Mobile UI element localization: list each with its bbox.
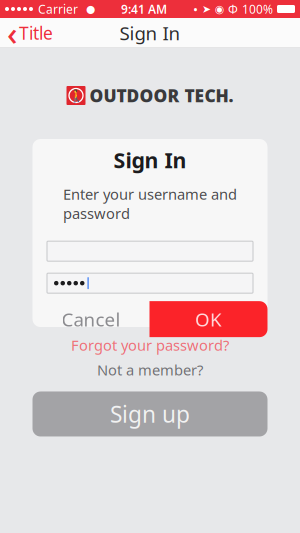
staticText: ‹ [7, 12, 17, 54]
staticText: Title [19, 21, 53, 44]
button[interactable]: Sign up [32, 391, 267, 436]
staticText: ➤ [202, 3, 211, 15]
staticText: Carrier [38, 1, 78, 17]
button[interactable]: Cancel [32, 301, 149, 337]
staticText: 100% [242, 1, 273, 17]
button[interactable]: Forgot your password? [50, 334, 250, 356]
staticText: Forgot your password? [71, 335, 229, 355]
staticText: ● [86, 3, 95, 15]
staticText: ◉ [215, 3, 224, 15]
staticText: • [193, 0, 198, 18]
staticText: 🚶 [68, 89, 83, 102]
button[interactable]: OK [149, 301, 267, 337]
staticText: OK [195, 307, 222, 332]
staticText: Cancel [61, 307, 120, 332]
staticText: Sign In [119, 21, 180, 45]
staticText: Enter your username and password [63, 184, 237, 223]
staticText: 9:41 AM [121, 1, 167, 17]
staticText: Ф [228, 1, 238, 17]
staticText: Not a member? [97, 360, 203, 379]
staticText: Sign In [113, 146, 186, 174]
button[interactable]: ‹ [0, 18, 61, 48]
staticText: OUTDOOR TECH. [89, 84, 233, 107]
staticText: Sign up [110, 399, 190, 429]
